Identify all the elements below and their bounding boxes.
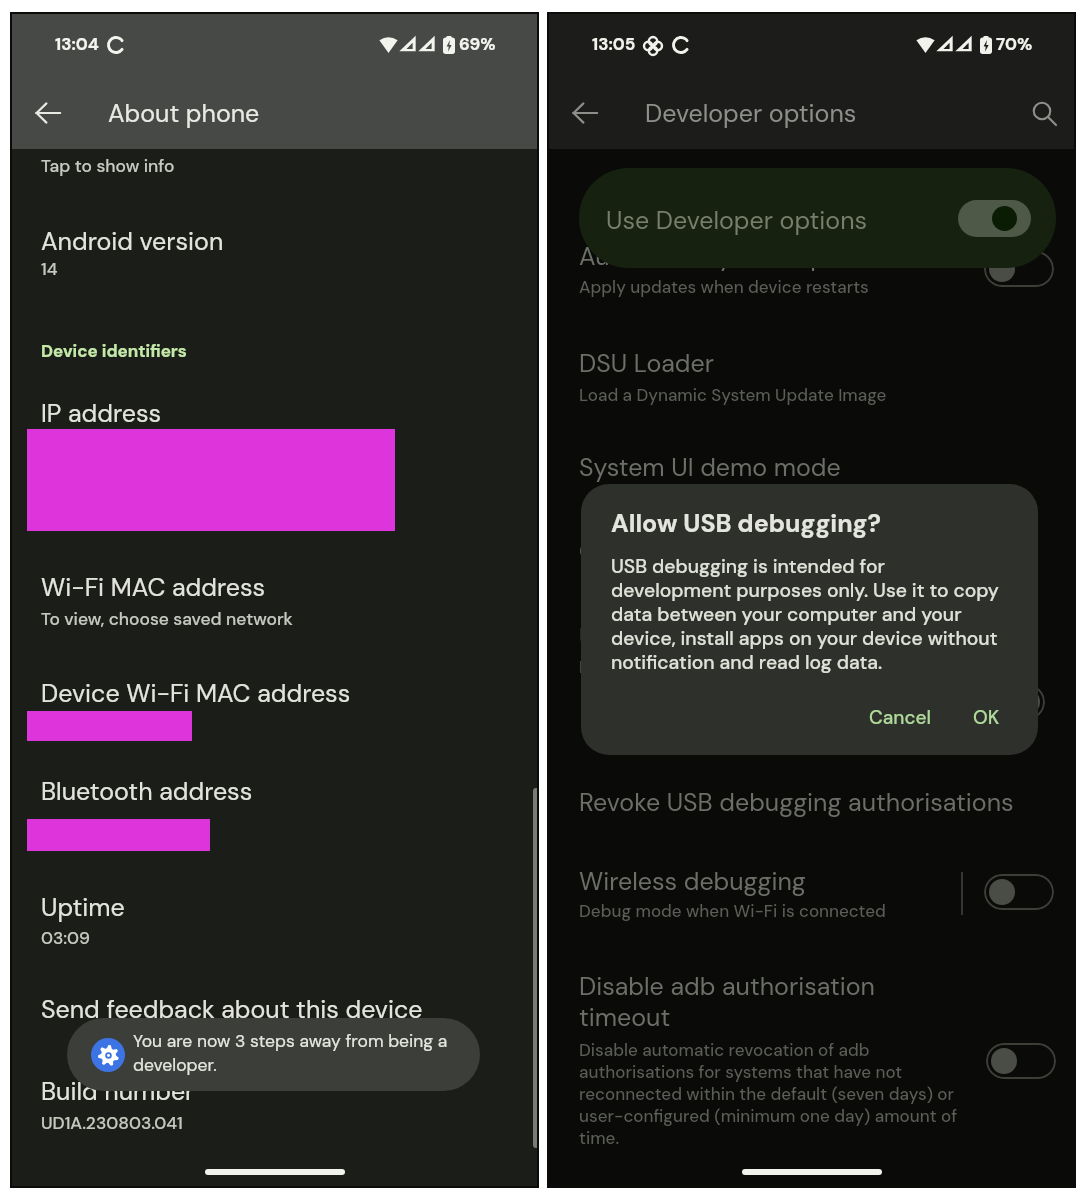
staticText: USB debugging is intended for developmen… (611, 554, 1007, 675)
staticText: About phone (108, 97, 260, 130)
button[interactable]: OK (959, 696, 1014, 739)
staticText: 13:05 (592, 33, 636, 55)
staticText: Device identifiers (41, 340, 187, 362)
staticText: Load a Dynamic System Update Image (579, 384, 887, 406)
staticText: USB debugging (579, 621, 754, 654)
staticText: Apply updates when device restarts (579, 276, 869, 298)
staticText: Tap to show info (41, 155, 175, 178)
staticText: 69% (459, 33, 496, 55)
staticText: Developer options (645, 97, 857, 130)
button[interactable]: Search (1016, 85, 1072, 141)
button[interactable]: Cancel (855, 696, 946, 739)
staticText: Use Developer options (606, 204, 868, 237)
staticText: Disable adb authorisation timeout (579, 970, 924, 1034)
staticText: Cancel (869, 705, 932, 730)
staticText: OK (973, 705, 1000, 730)
staticText: IP address (41, 397, 162, 430)
staticText: Wi-Fi MAC address (41, 571, 265, 604)
staticText: UD1A.230803.041 (41, 1112, 183, 1135)
staticText: DSU Loader (579, 347, 714, 380)
button[interactable] (975, 684, 1045, 720)
button[interactable] (986, 1043, 1056, 1079)
staticText: Device Wi-Fi MAC address (41, 677, 351, 710)
staticText: 13:04 (55, 33, 99, 55)
staticText: Revoke USB debugging authorisations (579, 786, 1014, 819)
staticText: Allow USB debugging? (611, 507, 881, 540)
staticText: Android version (41, 225, 224, 258)
staticText: Disable automatic revocation of adb auth… (579, 1039, 969, 1149)
staticText: To view, choose saved network (41, 608, 293, 631)
staticText: You are now 3 steps away from being a de… (133, 1030, 458, 1076)
staticText: Debug mode when Wi-Fi is connected (579, 900, 886, 922)
button[interactable]: You are now 3 steps away from being a de… (67, 1018, 480, 1091)
staticText: System UI demo mode (579, 451, 841, 484)
staticText: Uptime (41, 891, 125, 924)
staticText: Wireless debugging (579, 865, 806, 898)
staticText: Automatic system updates (579, 240, 892, 273)
staticText: Bluetooth address (41, 775, 253, 808)
staticText: Debug mode when USB is connected (579, 656, 874, 678)
button[interactable]: Use Developer options (579, 168, 1056, 268)
button[interactable]: Back (20, 85, 76, 141)
staticText: Quick settings developer tiles (579, 535, 923, 568)
staticText: Send feedback about this device (41, 993, 423, 1026)
button[interactable] (984, 251, 1054, 287)
staticText: 70% (996, 33, 1033, 55)
button[interactable]: Back (557, 85, 613, 141)
button[interactable] (984, 874, 1054, 910)
staticText: 03:09 (41, 927, 91, 950)
staticText: 14 (41, 258, 58, 281)
staticText: Build number (41, 1075, 195, 1108)
